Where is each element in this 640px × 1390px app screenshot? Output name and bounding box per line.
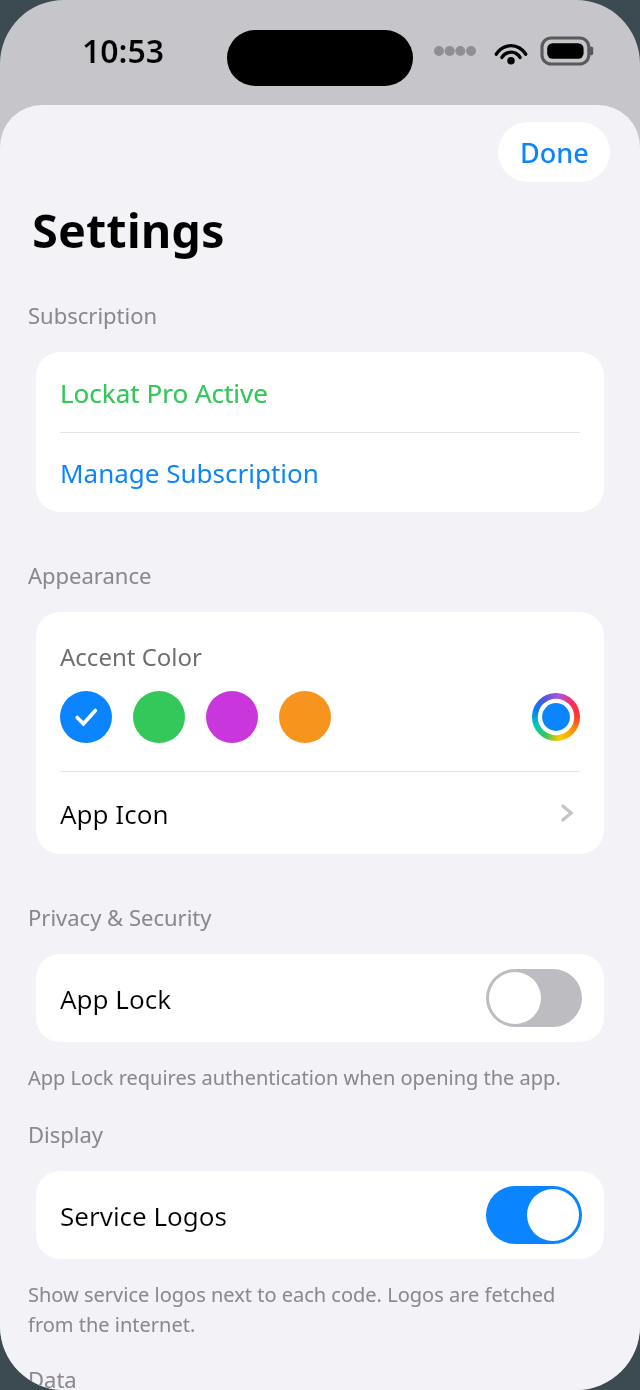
staticText: Show service logos next to each code. Lo… — [28, 1281, 600, 1338]
staticText: Privacy & Security — [28, 902, 212, 932]
staticText: Data — [28, 1364, 77, 1390]
staticText: Manage Subscription — [60, 455, 319, 490]
staticText: Settings — [32, 198, 225, 262]
staticText: Lockat Pro Active — [60, 375, 268, 410]
staticText: Service Logos — [60, 1198, 228, 1233]
button[interactable]: App Lock — [486, 969, 582, 1027]
button[interactable]: Custom color — [532, 693, 580, 741]
staticText: App Lock requires authentication when op… — [28, 1064, 561, 1091]
staticText: 10:53 — [82, 29, 165, 73]
staticText: Subscription — [28, 300, 158, 330]
staticText: Display — [28, 1119, 104, 1149]
button[interactable]: Service Logos — [486, 1186, 582, 1244]
staticText: App Lock — [60, 981, 172, 1016]
button[interactable]: App Lock — [36, 954, 604, 1042]
button[interactable]: App Icon — [36, 772, 604, 854]
staticText: Accent Color — [60, 640, 202, 673]
button[interactable]: Accent color 0 — [60, 691, 112, 743]
button[interactable]: Done — [498, 122, 610, 182]
staticText: Done — [520, 134, 589, 171]
button[interactable]: Manage Subscription — [36, 433, 604, 512]
button[interactable]: Service Logos — [36, 1171, 604, 1259]
staticText: App Icon — [60, 796, 169, 831]
button[interactable]: Accent color 2 — [206, 691, 258, 743]
button[interactable]: Accent color 1 — [133, 691, 185, 743]
button[interactable]: Accent color 3 — [279, 691, 331, 743]
staticText: Appearance — [28, 560, 152, 590]
button[interactable]: Lockat Pro Active — [36, 352, 604, 432]
